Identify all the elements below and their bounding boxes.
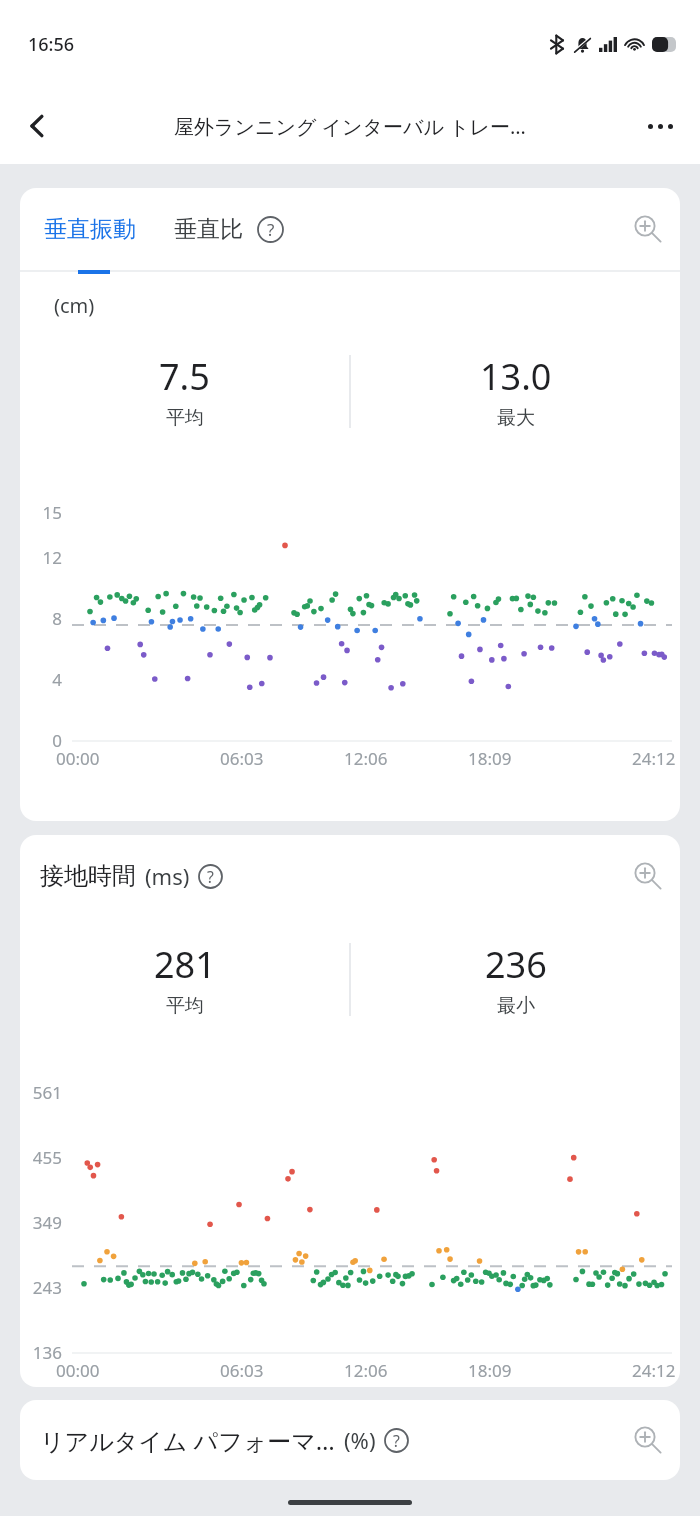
staticText: 4 bbox=[52, 668, 62, 691]
button[interactable]: Help bbox=[251, 210, 290, 249]
staticText: 7.5 bbox=[159, 352, 210, 401]
staticText: 18:09 bbox=[468, 1359, 512, 1382]
staticText: 243 bbox=[32, 1276, 62, 1299]
staticText: ? bbox=[267, 218, 275, 241]
staticText: 平均 bbox=[166, 994, 204, 1018]
staticText: 06:03 bbox=[220, 1359, 264, 1382]
button[interactable]: Expand chart bbox=[624, 1416, 672, 1464]
staticText: 最小 bbox=[497, 994, 535, 1018]
staticText: 349 bbox=[32, 1211, 62, 1234]
staticText: 垂直振動 bbox=[44, 215, 136, 244]
staticText: 281 bbox=[154, 940, 216, 989]
staticText: 15 bbox=[42, 501, 62, 524]
staticText: 24:12 bbox=[632, 1359, 676, 1382]
button[interactable]: Expand chart bbox=[624, 205, 672, 253]
button[interactable]: Expand chart bbox=[624, 852, 672, 900]
button[interactable]: Help bbox=[378, 1422, 415, 1459]
staticText: ? bbox=[393, 1430, 400, 1451]
staticText: (%) bbox=[344, 1425, 376, 1455]
staticText: 0 bbox=[52, 729, 62, 752]
staticText: リアルタイム パフォーマ… bbox=[40, 1424, 335, 1457]
staticText: 12 bbox=[42, 546, 62, 569]
staticText: ? bbox=[207, 866, 214, 887]
staticText: 18:09 bbox=[468, 747, 512, 770]
staticText: 136 bbox=[32, 1341, 62, 1364]
staticText: 8 bbox=[52, 607, 62, 630]
staticText: 00:00 bbox=[56, 1359, 100, 1382]
button[interactable]: Help bbox=[192, 858, 229, 895]
staticText: 455 bbox=[32, 1146, 62, 1169]
staticText: (ms) bbox=[145, 861, 190, 891]
staticText: 13.0 bbox=[480, 352, 552, 401]
staticText: (cm) bbox=[54, 292, 95, 319]
staticText: 最大 bbox=[497, 406, 535, 430]
staticText: 屋外ランニング インターバル トレー… bbox=[174, 113, 526, 140]
staticText: 00:00 bbox=[56, 747, 100, 770]
staticText: 561 bbox=[32, 1081, 62, 1104]
staticText: 接地時間 bbox=[40, 861, 136, 891]
staticText: 12:06 bbox=[344, 1359, 388, 1382]
staticText: 24:12 bbox=[632, 747, 676, 770]
staticText: 平均 bbox=[166, 406, 204, 430]
staticText: 236 bbox=[485, 940, 547, 989]
button[interactable]: 垂直振動 bbox=[40, 207, 140, 252]
staticText: 12:06 bbox=[344, 747, 388, 770]
button[interactable]: Back bbox=[10, 98, 66, 154]
staticText: 06:03 bbox=[220, 747, 264, 770]
button[interactable]: 垂直比 bbox=[170, 207, 247, 252]
staticText: 16:56 bbox=[28, 32, 75, 57]
staticText: 垂直比 bbox=[174, 215, 243, 244]
button[interactable]: More options bbox=[634, 100, 686, 152]
